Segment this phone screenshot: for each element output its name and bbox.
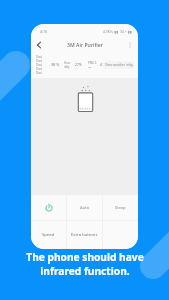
button[interactable]: Power xyxy=(45,204,53,212)
staticText: Extra buttons xyxy=(71,232,98,238)
staticText: Dust xyxy=(36,67,42,71)
staticText: Dust xyxy=(36,63,42,67)
staticText: 4 xyxy=(100,62,102,67)
staticText: View weather info xyxy=(105,63,132,67)
button[interactable]: More options xyxy=(125,40,135,50)
staticText: 38 % xyxy=(51,62,60,67)
button[interactable]: Back xyxy=(34,40,44,50)
staticText: Speed xyxy=(42,232,55,238)
button[interactable]: Speed xyxy=(31,221,66,249)
staticText: 4.3K/s ▮▮ 34 ⚡ ▮▮ xyxy=(103,29,132,34)
staticText: 4:16 xyxy=(40,29,48,34)
staticText: µg xyxy=(88,65,91,68)
button[interactable]: Sleep xyxy=(103,195,138,220)
button[interactable]: Power xyxy=(31,195,66,220)
staticText: The phone should have xyxy=(26,250,144,264)
staticText: infrared function. xyxy=(40,264,130,278)
button[interactable]: Extra buttons xyxy=(67,221,102,249)
staticText: idity xyxy=(64,65,70,69)
button[interactable]: Auto xyxy=(67,195,102,220)
staticText: Auto xyxy=(80,205,90,211)
staticText: Hum xyxy=(64,61,71,65)
staticText: 27% xyxy=(75,62,82,67)
button[interactable]: View weather info xyxy=(102,61,135,69)
staticText: Dust xyxy=(36,71,42,75)
staticText: Sleep xyxy=(115,205,126,211)
staticText: 3M Air Purifier xyxy=(67,41,103,48)
staticText: PM2.5 xyxy=(88,61,97,65)
staticText: Dust xyxy=(36,55,42,59)
staticText: Dust xyxy=(36,59,42,63)
